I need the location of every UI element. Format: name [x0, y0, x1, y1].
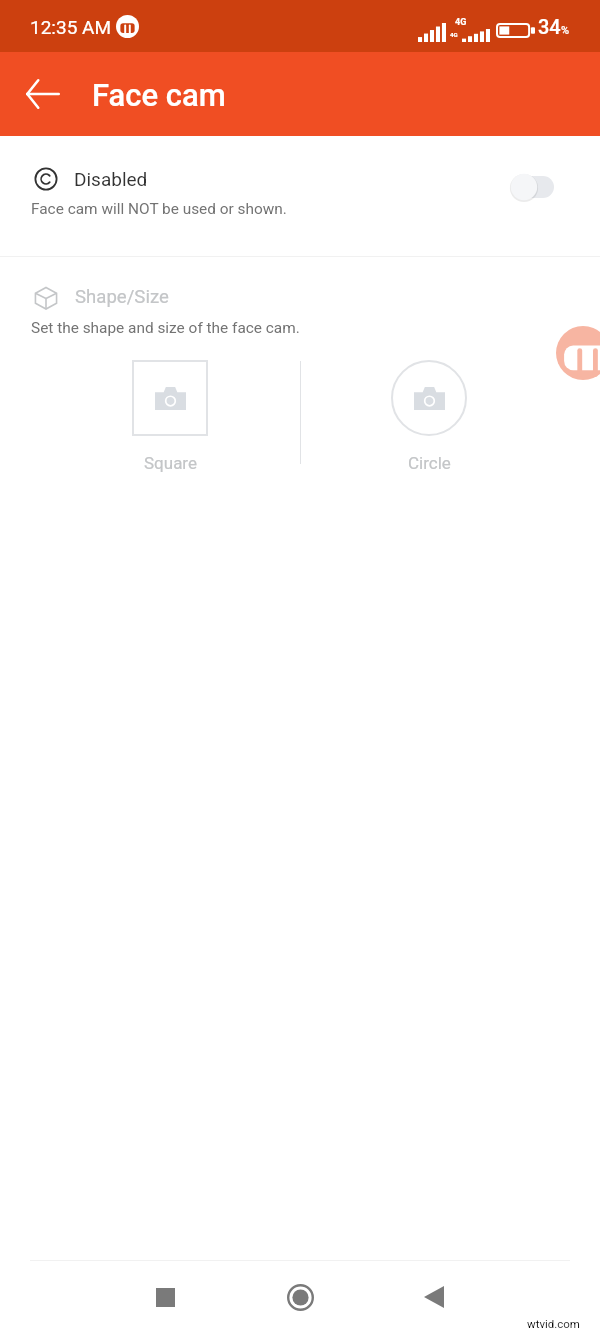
staticText: Shape/Size — [75, 286, 169, 308]
staticText: Set the shape and size of the face cam. — [31, 319, 300, 337]
staticText: Square — [144, 453, 197, 473]
staticText: Disabled — [74, 168, 148, 190]
staticText: Circle — [408, 453, 451, 473]
button[interactable]: Disabled — [0, 137, 600, 256]
staticText: wtvid.com — [527, 1317, 580, 1330]
button[interactable]: Back — [17, 68, 69, 120]
button[interactable] — [510, 173, 554, 201]
staticText: Face cam — [92, 77, 226, 113]
button[interactable]: Recent apps — [137, 1269, 193, 1325]
staticText: 12:35 AM — [30, 16, 112, 38]
staticText: Face cam will NOT be used or shown. — [31, 200, 287, 218]
button[interactable]: Circle — [359, 360, 499, 473]
staticText: 34 — [538, 15, 561, 38]
staticText: 4G — [450, 31, 458, 38]
button[interactable]: Back — [406, 1269, 462, 1325]
staticText: % — [561, 24, 570, 37]
button[interactable]: Square — [100, 360, 240, 473]
staticText: 4G — [455, 17, 467, 28]
button[interactable]: Home — [272, 1269, 328, 1325]
